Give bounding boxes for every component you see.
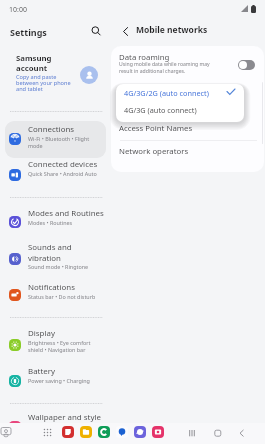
button[interactable]: App: [80, 426, 92, 438]
button[interactable]: Data roaming toggle: [238, 60, 255, 70]
button[interactable]: Recent apps: [186, 428, 196, 438]
staticText: Using mobile data while roaming may resu…: [119, 61, 210, 74]
button[interactable]: Back: [237, 428, 247, 438]
staticText: Copy and paste between your phone and ta…: [16, 73, 71, 93]
staticText: Settings: [10, 26, 47, 38]
button[interactable]: All apps: [43, 428, 52, 437]
button[interactable]: Samsung account: [5, 45, 106, 100]
button[interactable]: Modes and Routines: [5, 203, 106, 240]
staticText: 10:00: [9, 5, 27, 15]
button[interactable]: Network operators: [111, 140, 264, 172]
button[interactable]: Back: [118, 24, 132, 38]
staticText: 4G/3G/2G (auto connect): [124, 88, 209, 98]
staticText: Power saving • Charging: [28, 377, 90, 384]
staticText: Notifications: [28, 282, 75, 293]
button[interactable]: Display: [5, 326, 106, 366]
button[interactable]: Wallpaper and style: [5, 412, 106, 444]
button[interactable]: 4G/3G (auto connect): [116, 104, 244, 122]
button[interactable]: Access Point Names: [111, 108, 264, 140]
button[interactable]: Connections: [5, 121, 106, 158]
staticText: Modes • Routines: [28, 219, 73, 226]
button[interactable]: App: [152, 426, 164, 438]
staticText: Modes and Routines: [28, 208, 104, 219]
staticText: Wallpaper and style: [28, 412, 101, 423]
staticText: Display: [28, 328, 55, 339]
staticText: Connections: [28, 124, 75, 135]
staticText: Quick Share • Android Auto: [28, 170, 97, 177]
staticText: Status bar • Do not disturb: [28, 293, 96, 300]
button[interactable]: Data roaming: [111, 46, 264, 82]
button[interactable]: Notifications: [5, 280, 106, 317]
staticText: Samsung account: [16, 53, 52, 73]
button[interactable]: Messages: [116, 426, 128, 438]
button[interactable]: Preferred network type: [111, 82, 264, 108]
staticText: Wi-Fi • Bluetooth • Flight mode: [28, 135, 90, 149]
staticText: Data roaming: [119, 52, 170, 63]
staticText: Network operators: [119, 146, 189, 157]
button[interactable]: Home: [212, 428, 222, 438]
button[interactable]: Battery: [5, 366, 106, 403]
button[interactable]: Connected devices: [5, 158, 106, 195]
button[interactable]: Sounds and vibration: [5, 240, 106, 280]
staticText: Mobile networks: [136, 24, 208, 36]
staticText: Wallpapers • Color palette: [28, 423, 94, 430]
button[interactable]: 4G/3G/2G (auto connect): [116, 84, 244, 104]
button[interactable]: App: [98, 426, 110, 438]
staticText: Connected devices: [28, 159, 98, 170]
staticText: Preferred network type: [119, 89, 205, 100]
staticText: Battery: [28, 366, 55, 377]
staticText: Access Point Names: [119, 123, 193, 134]
staticText: 4G/3G (auto connect): [124, 105, 197, 115]
button[interactable]: App: [62, 426, 74, 438]
button[interactable]: App: [134, 426, 146, 438]
staticText: Sound mode • Ringtone: [28, 263, 89, 270]
button[interactable]: Search: [88, 23, 104, 39]
staticText: Sounds and vibration: [28, 242, 72, 263]
staticText: Brightness • Eye comfort shield • Naviga…: [28, 339, 91, 353]
button[interactable]: Recents: [0, 426, 12, 438]
